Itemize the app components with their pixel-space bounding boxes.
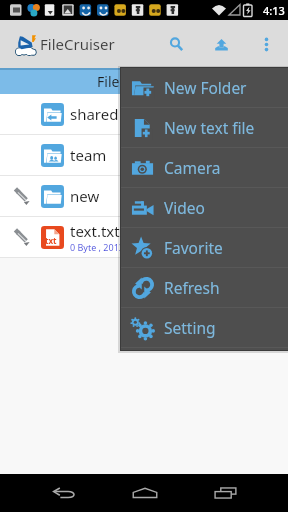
- staticText: shared: [70, 104, 119, 124]
- staticText: File: [97, 72, 120, 91]
- button[interactable]: Recent apps: [185, 474, 266, 512]
- button[interactable]: Upload: [199, 20, 244, 68]
- button[interactable]: Favorite: [121, 228, 288, 267]
- button[interactable]: Setting: [121, 308, 288, 347]
- button[interactable]: New text file: [121, 108, 288, 147]
- button[interactable]: shared: [0, 94, 288, 134]
- button[interactable]: new: [0, 176, 288, 216]
- staticText: 0 Byte , 2013-06-20: [70, 241, 151, 253]
- button[interactable]: team: [0, 135, 288, 175]
- staticText: Video: [164, 197, 205, 218]
- button[interactable]: Home: [104, 474, 185, 512]
- staticText: Camera: [164, 157, 221, 178]
- staticText: Favorite: [164, 237, 223, 258]
- staticText: New text file: [164, 117, 255, 138]
- staticText: text.txt: [70, 221, 120, 241]
- staticText: Refresh: [164, 277, 220, 298]
- staticText: new: [70, 186, 100, 206]
- button[interactable]: txt: [0, 217, 288, 257]
- staticText: Setting: [164, 317, 216, 338]
- staticText: FileCruiser: [40, 34, 115, 54]
- button[interactable]: Camera: [121, 148, 288, 187]
- staticText: team: [70, 145, 107, 165]
- button[interactable]: Back: [23, 474, 104, 512]
- staticText: txt: [45, 235, 57, 246]
- button[interactable]: Search: [154, 20, 199, 68]
- staticText: New Folder: [164, 77, 247, 98]
- button[interactable]: New Folder: [121, 68, 288, 107]
- button[interactable]: Refresh: [121, 268, 288, 307]
- button[interactable]: More options: [244, 20, 288, 68]
- staticText: 4:13: [263, 3, 285, 18]
- button[interactable]: Video: [121, 188, 288, 227]
